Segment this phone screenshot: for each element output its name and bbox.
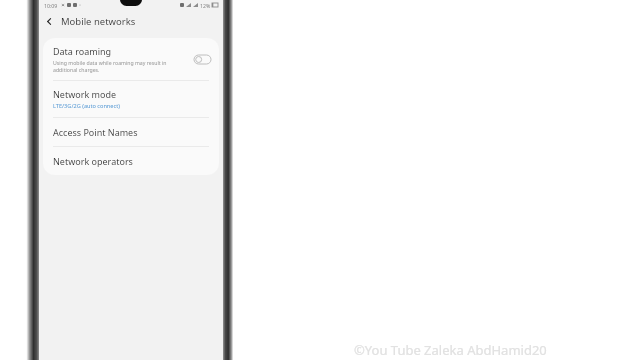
button[interactable]: Back bbox=[39, 11, 59, 31]
staticText: ©You Tube Zaleka AbdHamid20 bbox=[354, 341, 547, 359]
staticText: Using mobile data while roaming may resu… bbox=[53, 59, 167, 66]
button[interactable]: Network mode bbox=[43, 81, 219, 117]
button[interactable]: Data roaming bbox=[43, 38, 219, 80]
staticText: Network mode bbox=[53, 88, 117, 100]
button[interactable]: Data roaming toggle bbox=[194, 55, 211, 64]
staticText: Network operators bbox=[53, 155, 133, 167]
staticText: 10:09 bbox=[44, 2, 58, 9]
staticText: Access Point Names bbox=[53, 126, 138, 138]
button[interactable]: Network operators bbox=[43, 147, 219, 175]
staticText: additional charges. bbox=[53, 66, 100, 73]
staticText: Data roaming bbox=[53, 45, 112, 57]
staticText: LTE/3G/2G (auto connect) bbox=[53, 102, 120, 110]
staticText: Mobile networks bbox=[61, 15, 136, 28]
button[interactable]: Access Point Names bbox=[43, 118, 219, 146]
staticText: 12% bbox=[200, 2, 211, 9]
